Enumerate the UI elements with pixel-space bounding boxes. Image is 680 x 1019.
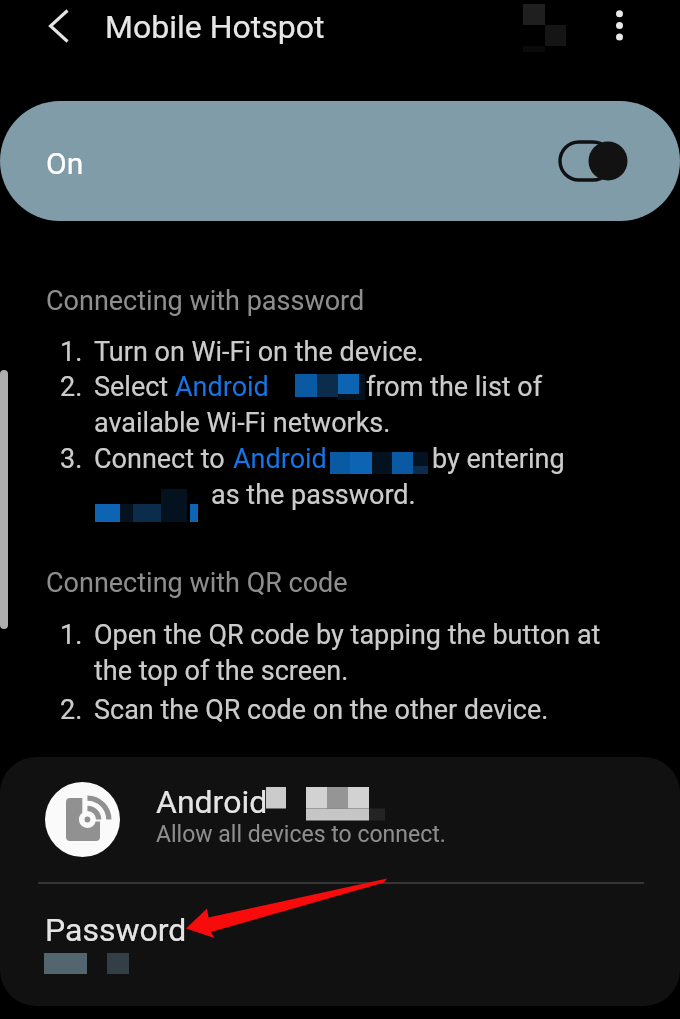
staticText: Android xyxy=(233,443,327,475)
staticText: from the list of xyxy=(366,371,543,403)
staticText: Allow all devices to connect. xyxy=(156,821,446,848)
staticText: Connecting with QR code xyxy=(46,567,348,599)
staticText: as the password. xyxy=(211,479,416,511)
staticText: 2. xyxy=(60,371,83,403)
button[interactable]: On xyxy=(0,101,680,221)
staticText: Android xyxy=(175,371,269,403)
staticText: by entering xyxy=(432,443,565,475)
staticText: Connecting with password xyxy=(46,285,365,317)
staticText: Password xyxy=(45,911,187,949)
staticText: Connect to xyxy=(94,443,232,475)
button[interactable]: More options xyxy=(595,0,645,56)
staticText: 3. xyxy=(60,443,83,475)
staticText: Android xyxy=(156,783,268,821)
staticText: Scan the QR code on the other device. xyxy=(94,694,549,726)
staticText: available Wi-Fi networks. xyxy=(94,407,391,439)
staticText: On xyxy=(46,146,84,181)
staticText: Turn on Wi-Fi on the device. xyxy=(94,336,424,368)
button[interactable]: Android xyxy=(0,757,680,882)
staticText: Mobile Hotspot xyxy=(105,8,325,46)
staticText: 1. xyxy=(60,336,83,368)
staticText: 1. xyxy=(60,619,83,651)
button[interactable]: Navigate up xyxy=(30,0,88,58)
staticText: 2. xyxy=(60,694,83,726)
staticText: the top of the screen. xyxy=(94,655,349,687)
staticText: Select xyxy=(94,371,175,403)
staticText: Open the QR code by tapping the button a… xyxy=(94,619,601,651)
button[interactable]: Password xyxy=(0,884,680,1006)
button[interactable]: Show QR code xyxy=(505,0,571,56)
